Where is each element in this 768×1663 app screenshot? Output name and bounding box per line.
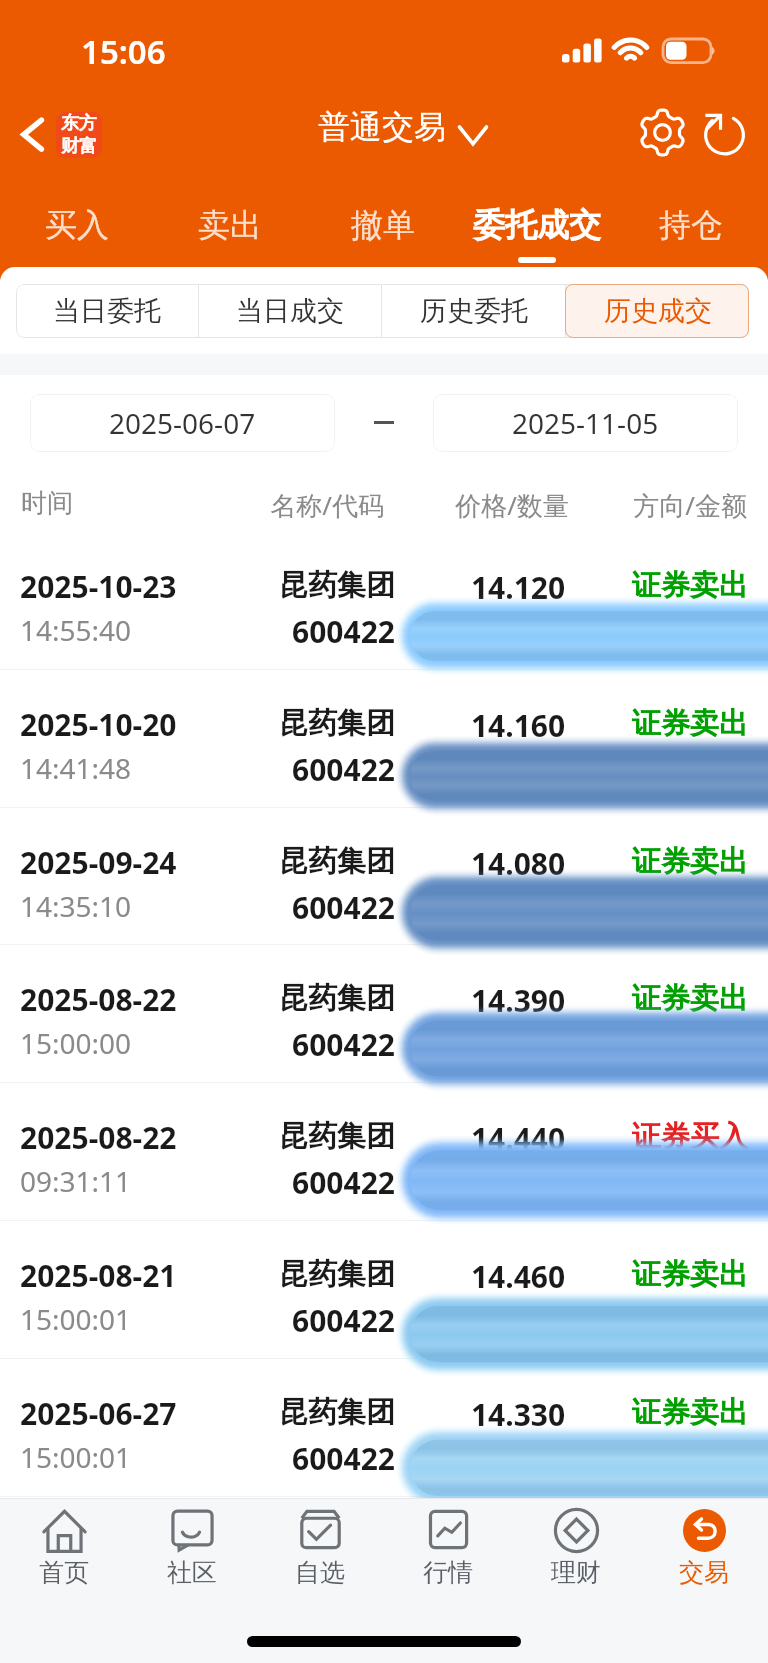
- staticText: 15:06: [81, 29, 166, 74]
- staticText: 证券卖出: [528, 567, 748, 604]
- button[interactable]: Refresh: [698, 107, 751, 160]
- button[interactable]: 2025-10-23: [0, 531, 768, 669]
- staticText: 理财: [551, 1557, 601, 1588]
- staticText: 当日委托: [53, 294, 161, 328]
- staticText: 14:41:48: [20, 749, 132, 787]
- staticText: 昆药集团: [175, 567, 395, 604]
- button[interactable]: 交易: [640, 1498, 768, 1614]
- staticText: 方向/金额: [547, 487, 747, 523]
- staticText: 2025-09-24: [20, 842, 177, 883]
- staticText: 社区: [167, 1557, 217, 1588]
- staticText: 600422: [175, 1024, 395, 1065]
- button[interactable]: 2025-10-20: [0, 669, 768, 807]
- staticText: 600422: [175, 1300, 395, 1341]
- staticText: 证券卖出: [528, 705, 748, 742]
- staticText: 2025-10-23: [20, 566, 177, 607]
- staticText: 14:35:10: [20, 887, 132, 925]
- staticText: 证券卖出: [528, 1256, 748, 1293]
- staticText: 买入: [45, 205, 109, 245]
- button[interactable]: 历史委托: [382, 284, 565, 338]
- staticText: 600422: [175, 749, 395, 790]
- staticText: 14.440: [408, 1118, 628, 1159]
- button[interactable]: 普通交易: [318, 99, 488, 155]
- button[interactable]: 2025-08-22: [0, 1082, 768, 1220]
- button[interactable]: 卖出: [153, 193, 306, 265]
- staticText: 行情: [423, 1557, 473, 1588]
- staticText: 撤单: [351, 205, 415, 245]
- staticText: 昆药集团: [175, 1394, 395, 1431]
- staticText: 东方: [56, 112, 102, 135]
- staticText: 2025-11-05: [512, 404, 659, 442]
- staticText: 交易: [679, 1557, 729, 1588]
- staticText: 2025-06-27: [20, 1393, 177, 1434]
- staticText: 昆药集团: [175, 843, 395, 880]
- staticText: 14.080: [408, 843, 628, 884]
- button[interactable]: 理财: [512, 1498, 640, 1614]
- staticText: 09:31:11: [20, 1162, 132, 1200]
- staticText: 14.120: [408, 567, 628, 608]
- staticText: 首页: [39, 1557, 89, 1588]
- button[interactable]: 历史成交: [566, 284, 749, 338]
- staticText: 持仓: [659, 205, 723, 245]
- button[interactable]: 当日成交: [199, 284, 381, 338]
- staticText: 15:00:00: [20, 1024, 132, 1062]
- staticText: 昆药集团: [175, 1118, 395, 1155]
- button[interactable]: 首页: [0, 1498, 128, 1614]
- staticText: 历史委托: [420, 294, 528, 328]
- staticText: 15:00:01: [20, 1300, 132, 1338]
- button[interactable]: 买入: [0, 193, 153, 265]
- staticText: 600422: [175, 887, 395, 928]
- staticText: 当日成交: [236, 294, 344, 328]
- button[interactable]: East Money: [56, 112, 102, 158]
- staticText: 2025-10-20: [20, 704, 177, 745]
- staticText: 历史成交: [604, 294, 712, 328]
- staticText: 证券卖出: [528, 980, 748, 1017]
- staticText: 昆药集团: [175, 980, 395, 1017]
- button[interactable]: 2025-06-27: [0, 1358, 768, 1496]
- staticText: 600422: [175, 611, 395, 652]
- staticText: 财富: [56, 135, 102, 158]
- staticText: 昆药集团: [175, 705, 395, 742]
- staticText: 卖出: [198, 205, 262, 245]
- staticText: 2025-08-22: [20, 1117, 177, 1158]
- button[interactable]: 撤单: [306, 193, 460, 265]
- staticText: 价格/数量: [369, 487, 569, 523]
- staticText: 名称/代码: [184, 487, 384, 523]
- button[interactable]: 委托成交: [460, 193, 614, 265]
- staticText: 时间: [21, 487, 73, 520]
- staticText: 2025-08-21: [20, 1255, 177, 1296]
- staticText: 14.160: [408, 705, 628, 746]
- button[interactable]: 2025-06-07: [30, 394, 335, 452]
- staticText: 14.460: [408, 1256, 628, 1297]
- staticText: 委托成交: [473, 205, 601, 245]
- button[interactable]: 社区: [128, 1498, 256, 1614]
- button[interactable]: 2025-08-21: [0, 1220, 768, 1358]
- button[interactable]: 2025-08-22: [0, 944, 768, 1082]
- staticText: 14.390: [408, 980, 628, 1021]
- staticText: 14.330: [408, 1394, 628, 1435]
- button[interactable]: 持仓: [614, 193, 768, 265]
- staticText: 证券买入: [528, 1118, 748, 1155]
- staticText: 15:00:01: [20, 1438, 132, 1476]
- button[interactable]: 自选: [256, 1498, 384, 1614]
- button[interactable]: 当日委托: [16, 284, 198, 338]
- staticText: 自选: [295, 1557, 345, 1588]
- button[interactable]: 2025-09-24: [0, 807, 768, 945]
- staticText: 2025-06-07: [109, 404, 256, 442]
- staticText: 昆药集团: [175, 1256, 395, 1293]
- button[interactable]: 行情: [384, 1498, 512, 1614]
- button[interactable]: Back: [4, 106, 56, 158]
- button[interactable]: 2025-11-05: [433, 394, 738, 452]
- staticText: 600422: [175, 1162, 395, 1203]
- staticText: 14:55:40: [20, 611, 132, 649]
- button[interactable]: Settings: [634, 107, 691, 164]
- staticText: 证券卖出: [528, 843, 748, 880]
- staticText: 证券卖出: [528, 1394, 748, 1431]
- staticText: 600422: [175, 1438, 395, 1479]
- staticText: 普通交易: [318, 107, 446, 147]
- staticText: 2025-08-22: [20, 979, 177, 1020]
